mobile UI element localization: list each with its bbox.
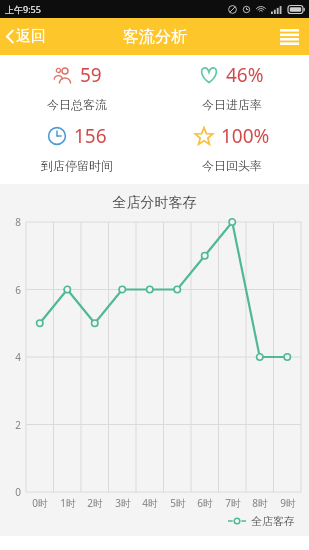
staticText: 2时 xyxy=(81,496,109,510)
button[interactable]: 59 xyxy=(0,62,154,112)
staticText: 4 xyxy=(0,350,21,364)
staticText: 9时 xyxy=(274,496,302,510)
staticText: 全店分时客存 xyxy=(0,194,309,212)
staticText: 今日总客流 xyxy=(47,97,107,112)
staticText: 8 xyxy=(0,215,21,229)
staticText: 到店停留时间 xyxy=(41,158,113,173)
staticText: 46% xyxy=(226,62,264,88)
staticText: 上午9:55 xyxy=(5,3,41,15)
staticText: 4时 xyxy=(136,496,164,510)
staticText: 1时 xyxy=(54,496,82,510)
button[interactable]: 46% xyxy=(154,62,309,112)
staticText: 3时 xyxy=(109,496,137,510)
staticText: 7时 xyxy=(219,496,247,510)
staticText: 0 xyxy=(0,485,21,499)
staticText: 返回 xyxy=(16,27,46,46)
staticText: 5时 xyxy=(164,496,192,510)
staticText: 59 xyxy=(80,62,102,88)
staticText: 全店客存 xyxy=(251,514,295,528)
staticText: 8时 xyxy=(246,496,274,510)
staticText: 0时 xyxy=(26,496,54,510)
button[interactable]: Menu xyxy=(270,22,309,52)
button[interactable]: 返回 xyxy=(0,22,58,51)
staticText: 今日回头率 xyxy=(202,158,262,173)
staticText: 6 xyxy=(0,283,21,297)
staticText: 156 xyxy=(74,123,107,149)
button[interactable]: 156 xyxy=(0,123,154,173)
button[interactable]: 100% xyxy=(154,123,309,173)
staticText: 6时 xyxy=(191,496,219,510)
staticText: 100% xyxy=(221,123,270,149)
staticText: 2 xyxy=(0,418,21,432)
staticText: 今日进店率 xyxy=(202,97,262,112)
staticText: 客流分析 xyxy=(123,27,187,47)
